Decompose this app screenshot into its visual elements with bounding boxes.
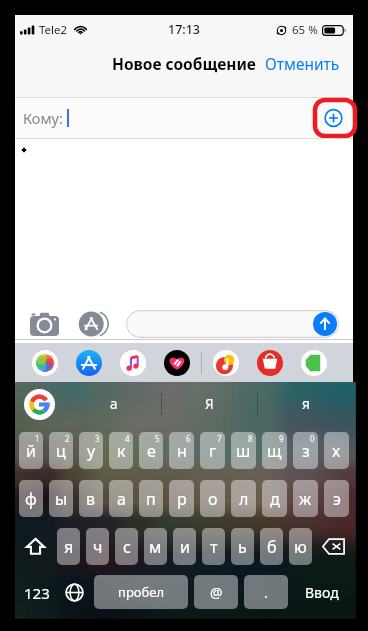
staticText: 1 [35, 433, 40, 444]
button[interactable]: Google [24, 389, 55, 420]
staticText: 17:13 [168, 21, 201, 38]
button[interactable]: и [173, 528, 196, 565]
staticText: 7 [217, 433, 222, 444]
staticText: пробел [118, 583, 165, 601]
button[interactable]: д [262, 480, 287, 517]
staticText: м [149, 536, 162, 558]
button[interactable]: Send [313, 312, 337, 336]
button[interactable]: а [109, 480, 133, 517]
button[interactable]: ц [49, 432, 73, 469]
staticText: з [302, 440, 310, 462]
button[interactable]: й [19, 432, 43, 469]
button[interactable]: ф [19, 480, 43, 517]
button[interactable]: ч [86, 528, 109, 565]
staticText: Отменить [265, 53, 340, 74]
staticText: т [210, 536, 218, 558]
button[interactable]: App Store [76, 350, 102, 376]
button[interactable]: у [79, 432, 103, 469]
button[interactable]: ш [231, 432, 256, 469]
staticText: и [180, 536, 190, 558]
button[interactable]: Music [120, 350, 146, 376]
button[interactable]: Add recipient [313, 98, 357, 138]
button[interactable]: щ [262, 432, 287, 469]
button[interactable]: з [293, 432, 318, 469]
button[interactable]: AliExpress [257, 350, 283, 376]
button[interactable]: . [244, 575, 288, 609]
staticText: а [117, 488, 126, 510]
staticText: н [177, 440, 187, 462]
button[interactable]: я [57, 528, 80, 565]
button[interactable]: р [169, 480, 194, 517]
button[interactable]: х [324, 432, 349, 469]
button[interactable]: е [139, 432, 163, 469]
button[interactable]: Evernote [301, 350, 327, 376]
button[interactable]: л [231, 480, 256, 517]
button[interactable]: Отменить [255, 48, 353, 82]
button[interactable]: пробел [94, 575, 188, 609]
button[interactable]: Camera [30, 312, 59, 336]
staticText: л [239, 488, 249, 510]
button[interactable]: т [202, 528, 225, 565]
staticText: 9 [279, 433, 284, 444]
staticText: а [110, 395, 118, 413]
button[interactable]: в [79, 480, 103, 517]
button[interactable]: ю [289, 528, 312, 565]
staticText: я [302, 395, 310, 413]
button[interactable]: г [200, 432, 225, 469]
staticText: 123 [24, 583, 50, 603]
button[interactable]: App Store [79, 311, 105, 337]
button[interactable]: с [115, 528, 138, 565]
button[interactable]: 123 [16, 574, 58, 611]
staticText: к [117, 440, 126, 462]
staticText: р [177, 488, 187, 510]
staticText: д [270, 488, 280, 510]
button[interactable]: ы [49, 480, 73, 517]
button[interactable]: Send [126, 310, 339, 338]
button[interactable]: б [260, 528, 283, 565]
staticText: щ [267, 440, 282, 462]
staticText: б [267, 536, 277, 558]
button[interactable]: о [200, 480, 225, 517]
button[interactable]: @ [194, 575, 238, 609]
staticText: о [208, 488, 218, 510]
button[interactable]: а [67, 382, 161, 426]
button[interactable]: Music app [213, 350, 239, 376]
button[interactable]: к [109, 432, 133, 469]
staticText: я [64, 536, 74, 558]
staticText: ь [238, 536, 247, 558]
button[interactable]: м [144, 528, 167, 565]
staticText: у [87, 440, 96, 462]
staticText: 4 [125, 433, 130, 444]
button[interactable]: Я [162, 382, 257, 426]
staticText: й [26, 440, 36, 462]
staticText: ы [55, 488, 68, 510]
button[interactable]: ь [231, 528, 254, 565]
button[interactable]: ж [293, 480, 318, 517]
button[interactable]: Ввод [291, 574, 352, 611]
staticText: ю [294, 536, 307, 558]
staticText: 8 [248, 433, 253, 444]
staticText: @ [210, 583, 223, 602]
button[interactable]: э [324, 480, 349, 517]
staticText: Кому: [23, 108, 63, 128]
staticText: в [86, 488, 96, 510]
staticText: ч [93, 536, 103, 558]
button[interactable]: н [169, 432, 194, 469]
button[interactable]: п [139, 480, 163, 517]
staticText: э [333, 488, 341, 510]
staticText: Новое сообщение [112, 53, 256, 74]
staticText: . [264, 583, 268, 602]
staticText: ж [299, 488, 312, 510]
staticText: ш [236, 440, 251, 462]
staticText: ф [25, 488, 37, 510]
staticText: с [123, 536, 131, 558]
button[interactable]: Digital Touch [164, 350, 190, 376]
button[interactable]: Backspace [315, 528, 352, 565]
staticText: AliExpress [260, 367, 280, 372]
staticText: 2 [65, 433, 70, 444]
staticText: Я [205, 395, 214, 413]
button[interactable]: Change language [58, 574, 91, 611]
button[interactable]: Shift [16, 528, 54, 565]
button[interactable]: я [258, 382, 353, 426]
button[interactable]: Photos [32, 350, 58, 376]
